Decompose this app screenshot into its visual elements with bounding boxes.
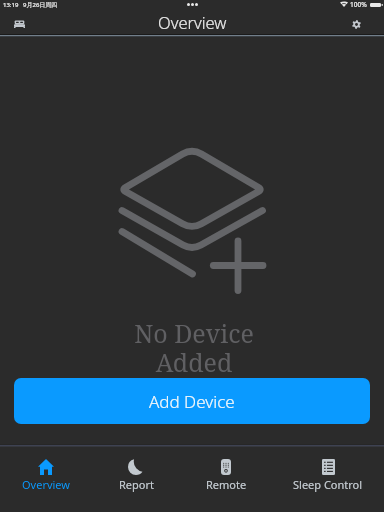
staticText: 100% (350, 0, 367, 9)
staticText: 13:19 9月26日周四 (3, 1, 58, 9)
button[interactable]: Report (96, 459, 176, 492)
staticText: Add Device (149, 390, 235, 413)
button[interactable]: Sleep Control (288, 459, 368, 492)
button[interactable]: Sleep (7, 14, 31, 34)
staticText: Sleep Control (293, 477, 363, 492)
button[interactable]: Add Device (14, 378, 370, 424)
button[interactable]: Settings (344, 14, 368, 34)
staticText: Overview (22, 477, 70, 492)
staticText: Remote (206, 477, 247, 492)
staticText: Overview (158, 11, 227, 31)
staticText: Report (119, 477, 154, 492)
button[interactable]: Overview (6, 459, 86, 492)
button[interactable]: Remote (186, 459, 266, 492)
staticText: No Device Added (112, 316, 276, 379)
